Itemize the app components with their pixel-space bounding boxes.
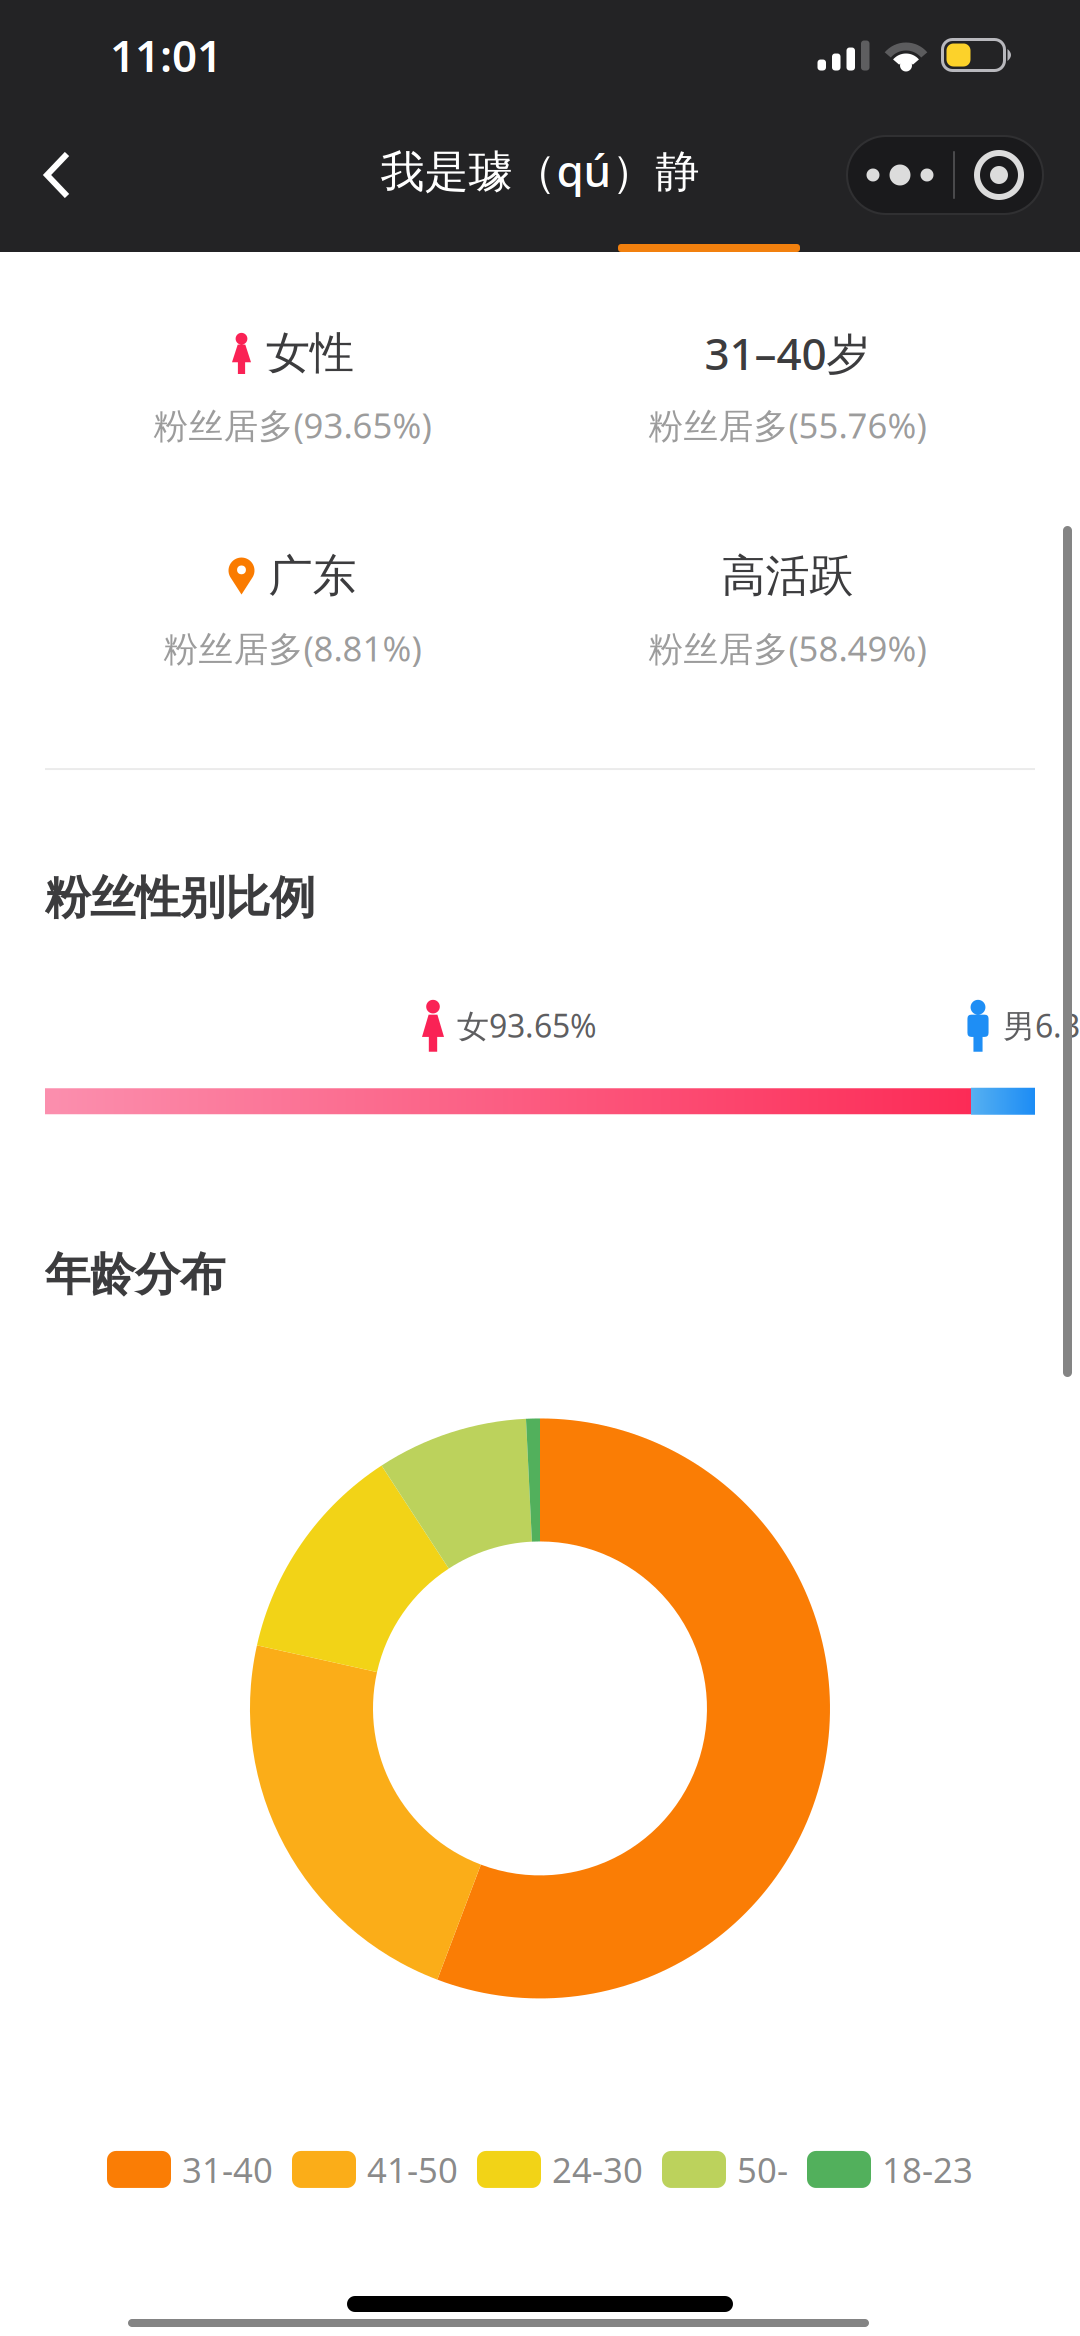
staticText: 我是璩（qú）静	[380, 141, 699, 199]
staticText: 41-50	[367, 2146, 458, 2192]
staticText: 18-23	[882, 2146, 973, 2192]
staticText: 31–40岁	[704, 324, 870, 382]
staticText: 粉丝性别比例	[45, 870, 315, 926]
staticText: 粉丝居多(58.49%)	[648, 625, 926, 671]
staticText: 男6.3	[1003, 1004, 1080, 1046]
staticText: 31-40	[182, 2146, 273, 2192]
staticText: 年龄分布	[45, 1247, 225, 1302]
staticText: 50-	[737, 2146, 788, 2192]
button[interactable]: More options	[847, 136, 1043, 214]
staticText: 24-30	[552, 2146, 643, 2192]
staticText: 粉丝居多(55.76%)	[648, 402, 926, 448]
staticText: 广东	[268, 549, 356, 603]
staticText: 粉丝居多(8.81%)	[163, 625, 421, 671]
staticText: 粉丝居多(93.65%)	[153, 402, 431, 448]
staticText: 女93.65%	[457, 1004, 597, 1046]
staticText: 11:01	[110, 26, 222, 84]
staticText: 女性	[266, 326, 354, 380]
staticText: 高活跃	[721, 549, 853, 603]
button[interactable]: Back	[0, 110, 114, 240]
